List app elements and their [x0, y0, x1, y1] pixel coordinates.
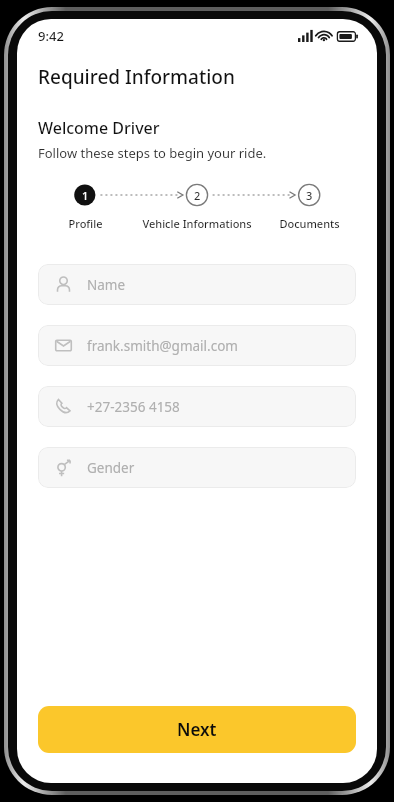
button[interactable]: Next	[38, 706, 356, 753]
staticText: Required Information	[38, 64, 235, 90]
button[interactable]: Name field	[38, 264, 356, 305]
staticText: 3	[306, 188, 313, 203]
button[interactable]: Phone field	[38, 386, 356, 427]
staticText: 9:42	[38, 27, 64, 45]
staticText: Name	[87, 276, 126, 294]
staticText: Follow these steps to begin your ride.	[38, 144, 267, 162]
staticText: Documents	[279, 216, 340, 231]
staticText: Vehicle Informations	[142, 216, 252, 231]
staticText: Profile	[68, 216, 103, 231]
staticText: Welcome Driver	[38, 117, 160, 139]
button[interactable]: Email field	[38, 325, 356, 366]
button[interactable]: 2	[132, 182, 262, 234]
button[interactable]: 3	[262, 182, 356, 234]
staticText: frank.smith@gmail.com	[87, 337, 238, 355]
staticText: +27-2356 4158	[87, 398, 180, 416]
button[interactable]: Gender field	[38, 447, 356, 488]
button[interactable]: 1	[38, 182, 132, 234]
staticText: Gender	[87, 459, 135, 477]
staticText: Next	[177, 718, 217, 741]
staticText: 2	[194, 188, 201, 203]
staticText: 1	[82, 188, 89, 203]
